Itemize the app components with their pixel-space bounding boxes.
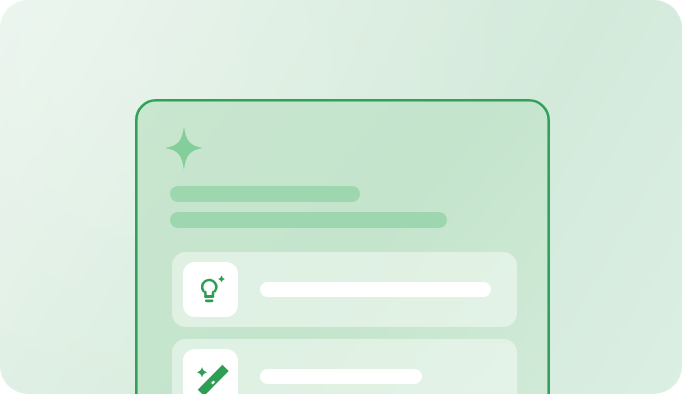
other: Sparkle <box>165 126 203 170</box>
other: Idea suggestion <box>196 275 226 305</box>
button[interactable]: Idea suggestion <box>172 252 517 327</box>
button[interactable]: Rewrite suggestion <box>172 339 517 394</box>
other: Rewrite suggestion <box>196 362 226 392</box>
